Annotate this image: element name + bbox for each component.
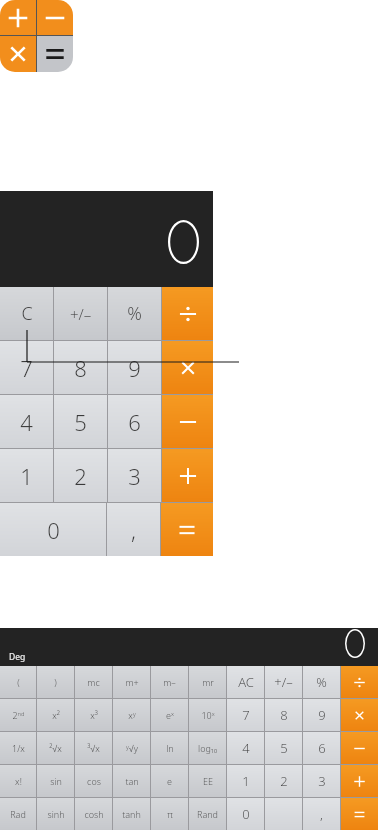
- button[interactable]: Divide: [162, 287, 213, 340]
- button[interactable]: 6: [303, 732, 340, 764]
- staticText: EE: [203, 775, 213, 787]
- staticText: eˣ: [166, 709, 174, 721]
- button[interactable]: 8: [265, 699, 302, 731]
- button[interactable]: 1/x: [0, 732, 36, 764]
- button[interactable]: AC: [227, 666, 264, 698]
- staticText: 9: [128, 353, 141, 383]
- button[interactable]: mc: [75, 666, 112, 698]
- button[interactable]: cos: [75, 765, 112, 797]
- button[interactable]: 0: [227, 798, 264, 830]
- staticText: ln: [166, 742, 174, 754]
- button[interactable]: Multiply: [341, 699, 378, 731]
- button[interactable]: ³√x: [75, 732, 112, 764]
- button[interactable]: 5: [265, 732, 302, 764]
- button[interactable]: [265, 798, 302, 830]
- staticText: ʸ√y: [126, 742, 138, 754]
- button[interactable]: Equals: [341, 798, 378, 830]
- staticText: 7: [242, 706, 250, 724]
- button[interactable]: log₁₀: [189, 732, 226, 764]
- staticText: tan: [125, 775, 139, 787]
- staticText: sin: [50, 775, 62, 787]
- button[interactable]: Minus: [162, 395, 213, 448]
- staticText: mc: [87, 676, 100, 688]
- button[interactable]: Plus: [162, 449, 213, 502]
- staticText: mr: [202, 676, 214, 688]
- button[interactable]: ln: [151, 732, 188, 764]
- button[interactable]: Rand: [189, 798, 226, 830]
- staticText: x!: [15, 775, 22, 787]
- button[interactable]: 2: [54, 449, 107, 502]
- button[interactable]: 9: [108, 341, 161, 394]
- button[interactable]: 2: [265, 765, 302, 797]
- button[interactable]: e: [151, 765, 188, 797]
- staticText: 1: [20, 461, 33, 491]
- staticText: xʸ: [128, 709, 136, 721]
- button[interactable]: x!: [0, 765, 36, 797]
- button[interactable]: sin: [37, 765, 74, 797]
- button[interactable]: (: [0, 666, 36, 698]
- staticText: 3: [128, 461, 141, 491]
- button[interactable]: ʸ√y: [113, 732, 150, 764]
- button[interactable]: π: [151, 798, 188, 830]
- button[interactable]: Equals: [161, 503, 213, 556]
- button[interactable]: Rad: [0, 798, 36, 830]
- button[interactable]: mr: [189, 666, 226, 698]
- staticText: log₁₀: [198, 742, 217, 754]
- button[interactable]: 7: [227, 699, 264, 731]
- button[interactable]: Plus: [341, 765, 378, 797]
- button[interactable]: 8: [54, 341, 107, 394]
- button[interactable]: ): [37, 666, 74, 698]
- button[interactable]: 3: [303, 765, 340, 797]
- button[interactable]: xʸ: [113, 699, 150, 731]
- button[interactable]: x²: [37, 699, 74, 731]
- staticText: 6: [128, 407, 141, 437]
- staticText: %: [127, 301, 142, 326]
- button[interactable]: tanh: [113, 798, 150, 830]
- button[interactable]: Calculator app icon: [0, 0, 73, 72]
- button[interactable]: ²√x: [37, 732, 74, 764]
- button[interactable]: ,: [303, 798, 340, 830]
- staticText: C: [21, 301, 33, 326]
- button[interactable]: ,: [107, 503, 160, 556]
- button[interactable]: 7: [0, 341, 53, 394]
- button[interactable]: 1: [227, 765, 264, 797]
- button[interactable]: %: [303, 666, 340, 698]
- button[interactable]: 5: [54, 395, 107, 448]
- button[interactable]: tan: [113, 765, 150, 797]
- button[interactable]: sinh: [37, 798, 74, 830]
- button[interactable]: cosh: [75, 798, 112, 830]
- button[interactable]: 1: [0, 449, 53, 502]
- button[interactable]: Multiply: [162, 341, 213, 394]
- staticText: tanh: [122, 808, 141, 820]
- button[interactable]: %: [108, 287, 161, 340]
- button[interactable]: C: [0, 287, 53, 340]
- staticText: e: [167, 775, 172, 787]
- staticText: 10ˣ: [201, 709, 215, 721]
- staticText: ,: [131, 515, 136, 545]
- staticText: 4: [242, 739, 250, 757]
- button[interactable]: m+: [113, 666, 150, 698]
- button[interactable]: eˣ: [151, 699, 188, 731]
- staticText: 8: [74, 353, 87, 383]
- button[interactable]: 3: [108, 449, 161, 502]
- staticText: 6: [318, 739, 326, 757]
- button[interactable]: +/–: [265, 666, 302, 698]
- button[interactable]: Minus: [341, 732, 378, 764]
- button[interactable]: 0: [0, 503, 106, 556]
- button[interactable]: 2ⁿᵈ: [0, 699, 36, 731]
- staticText: 2: [74, 461, 87, 491]
- button[interactable]: 6: [108, 395, 161, 448]
- button[interactable]: Divide: [341, 666, 378, 698]
- button[interactable]: x³: [75, 699, 112, 731]
- button[interactable]: 9: [303, 699, 340, 731]
- button[interactable]: 10ˣ: [189, 699, 226, 731]
- button[interactable]: EE: [189, 765, 226, 797]
- staticText: m–: [163, 676, 176, 688]
- staticText: 7: [20, 353, 33, 383]
- staticText: Rand: [197, 808, 218, 820]
- staticText: +/–: [274, 673, 293, 691]
- button[interactable]: 4: [0, 395, 53, 448]
- button[interactable]: 4: [227, 732, 264, 764]
- button[interactable]: m–: [151, 666, 188, 698]
- button[interactable]: +/–: [54, 287, 107, 340]
